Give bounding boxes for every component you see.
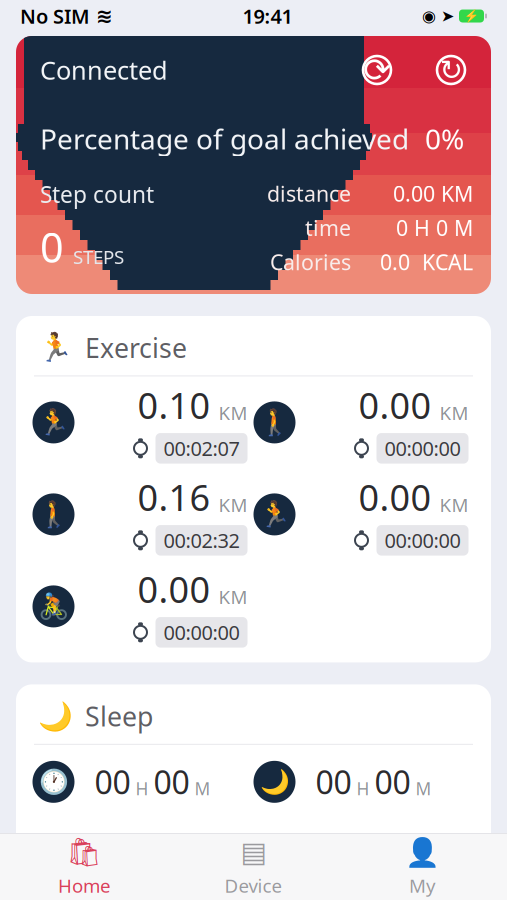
staticText: 0%	[425, 120, 464, 157]
button[interactable]: 🚶	[253, 376, 474, 468]
staticText: ◉	[422, 7, 436, 25]
staticText: 00:00:00	[384, 435, 460, 462]
staticText: ↻	[439, 54, 462, 86]
staticText: 🏃	[38, 332, 73, 364]
button[interactable]: ▤	[169, 836, 338, 898]
staticText: 🌙	[38, 700, 73, 732]
staticText: 0.10	[137, 381, 210, 429]
staticText: 00	[374, 761, 410, 803]
button[interactable]: 🏃	[32, 376, 253, 468]
button[interactable]: 🌙	[253, 745, 474, 819]
staticText: 00	[315, 761, 351, 803]
staticText: KM	[218, 492, 247, 517]
staticText: 00:00:00	[163, 619, 239, 646]
staticText: KM	[439, 400, 468, 425]
staticText: M	[415, 777, 431, 800]
button[interactable]: 🕐	[32, 745, 253, 819]
staticText: 👤	[405, 836, 440, 868]
staticText: Sleep	[85, 698, 153, 734]
staticText: 0.00	[358, 381, 431, 429]
button[interactable]: 🌛	[32, 819, 253, 893]
button[interactable]: Refresh	[433, 52, 469, 88]
staticText: 🕐	[38, 768, 68, 795]
staticText: 0.16	[137, 473, 210, 521]
button[interactable]: 🚴	[32, 560, 253, 652]
button[interactable]: 👤	[338, 836, 507, 898]
staticText: KM	[439, 492, 468, 517]
staticText: 🌙	[259, 768, 289, 795]
staticText: Step count	[40, 179, 154, 209]
staticText: 🏃	[37, 408, 69, 437]
staticText: Device	[224, 873, 282, 898]
staticText: ➤	[441, 7, 454, 25]
button[interactable]: 🚶	[32, 468, 253, 560]
staticText: ⚡	[464, 9, 479, 23]
staticText: 🛍	[66, 836, 102, 868]
staticText: 🚶	[258, 408, 290, 437]
staticText: 0	[40, 219, 64, 274]
staticText: Percentage of goal achieved	[40, 120, 409, 157]
button[interactable]: Sync	[359, 52, 395, 88]
staticText: H	[356, 777, 369, 800]
staticText: ≋	[96, 5, 113, 27]
staticText: Home	[58, 873, 111, 898]
staticText: My	[409, 873, 436, 898]
staticText: M	[194, 777, 210, 800]
staticText: 19:41	[242, 3, 292, 29]
staticText: 0.0 KCAL	[380, 248, 473, 276]
staticText: 00	[153, 761, 189, 803]
staticText: KM	[218, 400, 247, 425]
staticText: 0.00	[137, 565, 210, 613]
staticText: 0.00 KM	[393, 179, 473, 207]
staticText: No SIM	[20, 3, 90, 29]
staticText: Calories	[270, 248, 351, 276]
staticText: 🏃	[258, 500, 290, 529]
staticText: Exercise	[85, 330, 187, 365]
staticText: 00:00:00	[384, 527, 460, 554]
staticText: 00	[94, 761, 130, 803]
staticText: Connected	[40, 53, 168, 87]
staticText: 00	[94, 835, 130, 877]
staticText: 🚶	[37, 500, 69, 529]
staticText: 0 H 0 M	[396, 213, 473, 242]
staticText: 00:02:07	[163, 435, 239, 462]
staticText: 0.00	[358, 473, 431, 521]
staticText: time	[305, 213, 351, 242]
staticText: distance	[267, 179, 351, 207]
staticText: STEPS	[73, 244, 124, 269]
staticText: 🚴	[37, 592, 69, 621]
staticText: 00:02:32	[163, 527, 239, 554]
button[interactable]: 🛍	[0, 836, 169, 898]
button[interactable]: 🏃	[253, 468, 474, 560]
staticText: ⟳	[363, 51, 391, 89]
staticText: KM	[218, 584, 247, 609]
staticText: ▤	[240, 836, 266, 868]
staticText: H	[135, 777, 148, 800]
